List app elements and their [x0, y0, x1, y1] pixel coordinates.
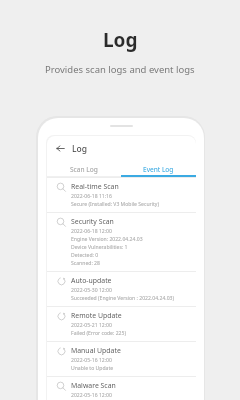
staticText: Log: [72, 143, 88, 155]
staticText: Remote Update: [71, 311, 122, 320]
staticText: Secure (Installed: V3 Mobile Security): [71, 201, 159, 208]
staticText: 2022-05-21 12:00: [71, 322, 112, 329]
staticText: 2022-06-18 11:16: [71, 193, 112, 200]
staticText: Detected: 0: [71, 252, 99, 259]
button[interactable]: Malware Scan: [47, 376, 196, 400]
staticText: Real-time Scan: [71, 182, 119, 191]
button[interactable]: Scan Log: [47, 161, 121, 177]
staticText: Event Log: [143, 165, 174, 174]
staticText: Failed (Error code: 225): [71, 330, 126, 337]
staticText: 2022-05-16 12:00: [71, 392, 112, 398]
staticText: Scan Log: [70, 165, 98, 174]
staticText: Malware Scan: [71, 381, 116, 390]
staticText: Device Vulnerabilities: 1: [71, 244, 128, 251]
staticText: 2022-05-30 12:00: [71, 287, 112, 294]
staticText: 2022-05-16 12:00: [71, 357, 112, 364]
staticText: Manual Update: [71, 346, 121, 355]
button[interactable]: Back: [51, 136, 69, 161]
staticText: Auto-update: [71, 276, 112, 285]
staticText: Log: [103, 27, 138, 53]
button[interactable]: Auto-update: [47, 271, 196, 306]
button[interactable]: Remote Update: [47, 306, 196, 341]
button[interactable]: Manual Update: [47, 341, 196, 376]
staticText: Security Scan: [71, 217, 114, 226]
staticText: Scanned: 28: [71, 260, 100, 267]
button[interactable]: Event Log: [121, 161, 196, 177]
staticText: 2022-06-18 12:00: [71, 228, 112, 235]
staticText: Unable to Update: [71, 365, 114, 372]
button[interactable]: Real-time Scan: [47, 177, 196, 212]
staticText: Succeeded (Engine Version : 2022.04.24.0…: [71, 295, 175, 302]
button[interactable]: Security Scan: [47, 212, 196, 271]
staticText: Provides scan logs and event logs: [45, 63, 195, 76]
staticText: Engine Version: 2022.04.24.03: [71, 236, 143, 243]
